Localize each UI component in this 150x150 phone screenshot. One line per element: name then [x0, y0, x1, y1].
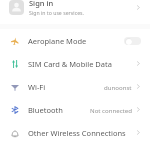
staticText: Aeroplane Mode	[28, 36, 87, 46]
staticText: Wi-Fi	[28, 82, 46, 92]
staticText: Sign in to use services.	[29, 9, 84, 16]
staticText: Not connected	[90, 106, 132, 114]
button[interactable]: Wi-Fi	[0, 75, 150, 98]
button[interactable]: Sign in	[0, 0, 150, 24]
button[interactable]: Other Wireless Connections	[0, 121, 150, 144]
button[interactable]: Bluetooth	[0, 98, 150, 121]
button[interactable]: SIM Card & Mobile Data	[0, 52, 150, 75]
staticText: Sign in	[29, 0, 54, 8]
staticText: dunoonst	[104, 83, 132, 91]
button[interactable]: Aeroplane Mode	[0, 29, 150, 52]
staticText: Bluetooth	[28, 105, 63, 115]
staticText: Other Wireless Connections	[28, 128, 126, 138]
staticText: SIM Card & Mobile Data	[28, 59, 112, 69]
button[interactable]: Toggle Aeroplane Mode	[124, 37, 141, 45]
